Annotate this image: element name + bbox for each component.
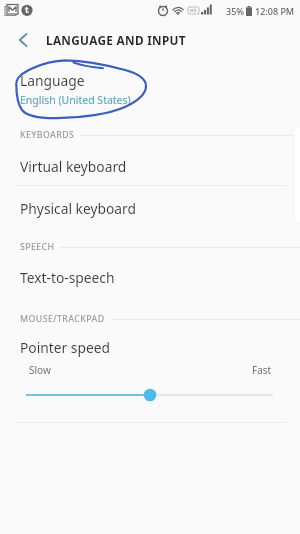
- staticText: Virtual keyboard: [20, 157, 127, 176]
- staticText: Slow: [29, 363, 51, 377]
- staticText: 12:08 PM: [255, 5, 295, 17]
- staticText: Physical keyboard: [20, 199, 136, 218]
- button[interactable]: Back: [6, 23, 40, 57]
- staticText: 35%: [226, 5, 244, 17]
- staticText: Pointer speed: [20, 338, 110, 357]
- staticText: Fast: [252, 363, 272, 377]
- button[interactable]: Virtual keyboard: [0, 146, 300, 187]
- button[interactable]: Pointer speed slider: [0, 385, 300, 405]
- staticText: KEYBOARDS: [20, 129, 75, 141]
- staticText: Text-to-speech: [20, 268, 115, 287]
- button[interactable]: Language: [0, 66, 300, 110]
- staticText: LANGUAGE AND INPUT: [46, 32, 186, 48]
- staticText: SPEECH: [20, 241, 55, 253]
- staticText: MOUSE/TRACKPAD: [20, 313, 105, 325]
- button[interactable]: Physical keyboard: [0, 188, 300, 229]
- staticText: English (United States): [20, 93, 131, 107]
- button[interactable]: Text-to-speech: [0, 257, 300, 298]
- staticText: Language: [20, 71, 85, 90]
